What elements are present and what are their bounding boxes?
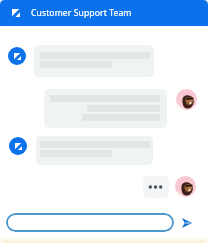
- button[interactable]: [36, 136, 153, 165]
- button[interactable]: Customer avatar: [176, 89, 197, 110]
- button[interactable]: Customer Support Team: [0, 0, 208, 26]
- button[interactable]: Typing: [143, 176, 169, 198]
- button[interactable]: Message input: [6, 213, 174, 232]
- staticText: Customer Support Team: [31, 7, 132, 19]
- button[interactable]: [44, 89, 167, 128]
- button[interactable]: Support agent avatar: [9, 137, 27, 155]
- button[interactable]: Support agent avatar: [8, 47, 26, 65]
- button[interactable]: Customer avatar: [175, 176, 196, 197]
- button[interactable]: [34, 45, 154, 77]
- button[interactable]: Send: [178, 214, 196, 232]
